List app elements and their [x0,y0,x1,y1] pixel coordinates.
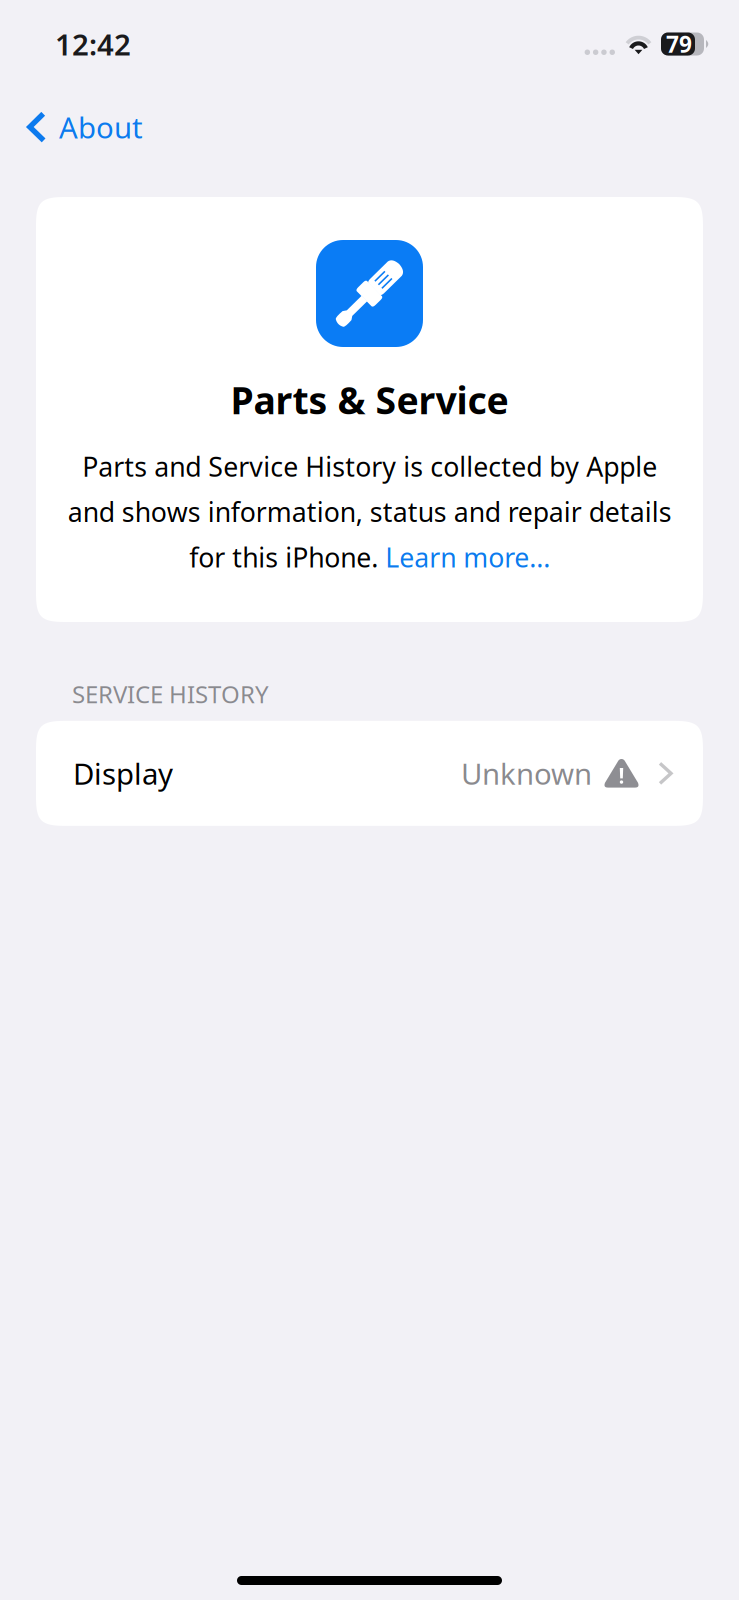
staticText: Unknown [461,754,592,793]
staticText: About [59,107,143,146]
button[interactable]: Display [36,721,703,826]
button[interactable]: About [0,97,165,156]
staticText: Display [73,754,173,793]
staticText: Parts & Service [230,375,508,425]
staticText: 79 [666,29,692,59]
staticText: Parts and Service History is collected b… [67,449,671,575]
staticText: SERVICE HISTORY [72,678,269,710]
staticText: 12:42 [55,24,131,63]
